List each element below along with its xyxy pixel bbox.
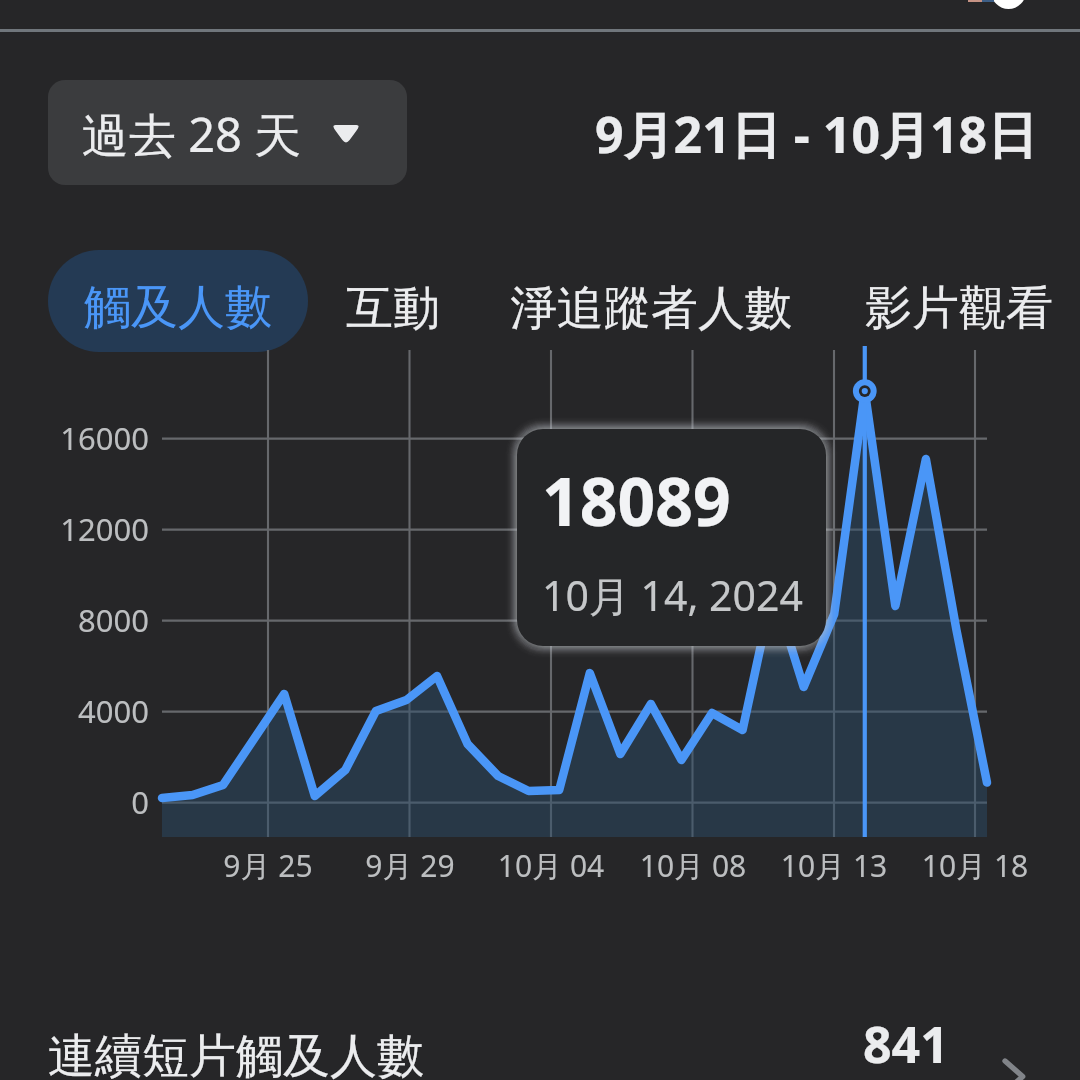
button[interactable]: 觸及人數 (48, 250, 308, 352)
staticText: 4000 (2, 690, 149, 732)
staticText: 10月 04 (461, 845, 641, 886)
staticText: 連續短片觸及人數 (48, 1027, 424, 1080)
button[interactable]: 影片觀看 (865, 272, 1053, 331)
staticText: 9月 25 (178, 845, 358, 886)
staticText: 10月 08 (603, 845, 783, 886)
staticText: 841 (863, 1010, 949, 1078)
button[interactable]: 互動 (346, 272, 440, 331)
staticText: 淨追蹤者人數 (510, 279, 792, 338)
staticText: 12000 (2, 508, 149, 550)
staticText: 10月 13 (744, 845, 924, 886)
button[interactable]: 淨追蹤者人數 (510, 272, 792, 331)
staticText: 9月 29 (320, 845, 500, 886)
button[interactable]: 連續短片觸及人數 (0, 1005, 1080, 1080)
staticText: 9月21日 - 10月18日 (595, 100, 1038, 168)
staticText: 互動 (346, 279, 440, 338)
staticText: 8000 (2, 599, 149, 641)
staticText: 影片觀看 (865, 279, 1053, 338)
staticText: 16000 (2, 417, 149, 459)
button[interactable]: 過去 28 天 (48, 80, 407, 185)
staticText: 觸及人數 (84, 278, 272, 337)
staticText: 過去 28 天 (82, 102, 302, 166)
other: Profile (991, 0, 1026, 9)
staticText: 18089 (542, 455, 731, 545)
staticText: 0 (2, 781, 149, 823)
staticText: 10月 14, 2024 (542, 567, 803, 623)
staticText: 10月 18 (885, 845, 1065, 886)
